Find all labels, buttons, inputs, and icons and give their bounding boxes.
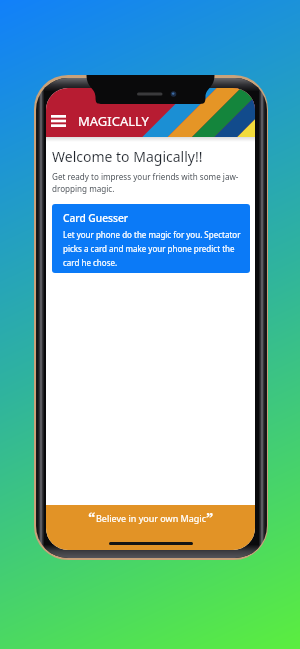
button[interactable]: Open navigation menu (48, 108, 68, 134)
staticText: MAGICALLY (78, 112, 149, 130)
staticText: Welcome to Magically!! (52, 147, 203, 166)
staticText: Let your phone do the magic for you. Spe… (63, 229, 242, 268)
button[interactable]: Card Guesser (52, 204, 250, 273)
staticText: Get ready to impress your friends with s… (52, 171, 250, 194)
staticText: “ (88, 507, 96, 527)
staticText: Believe in your own Magic (96, 512, 206, 524)
staticText: ” (206, 507, 214, 527)
staticText: Card Guesser (63, 211, 129, 225)
